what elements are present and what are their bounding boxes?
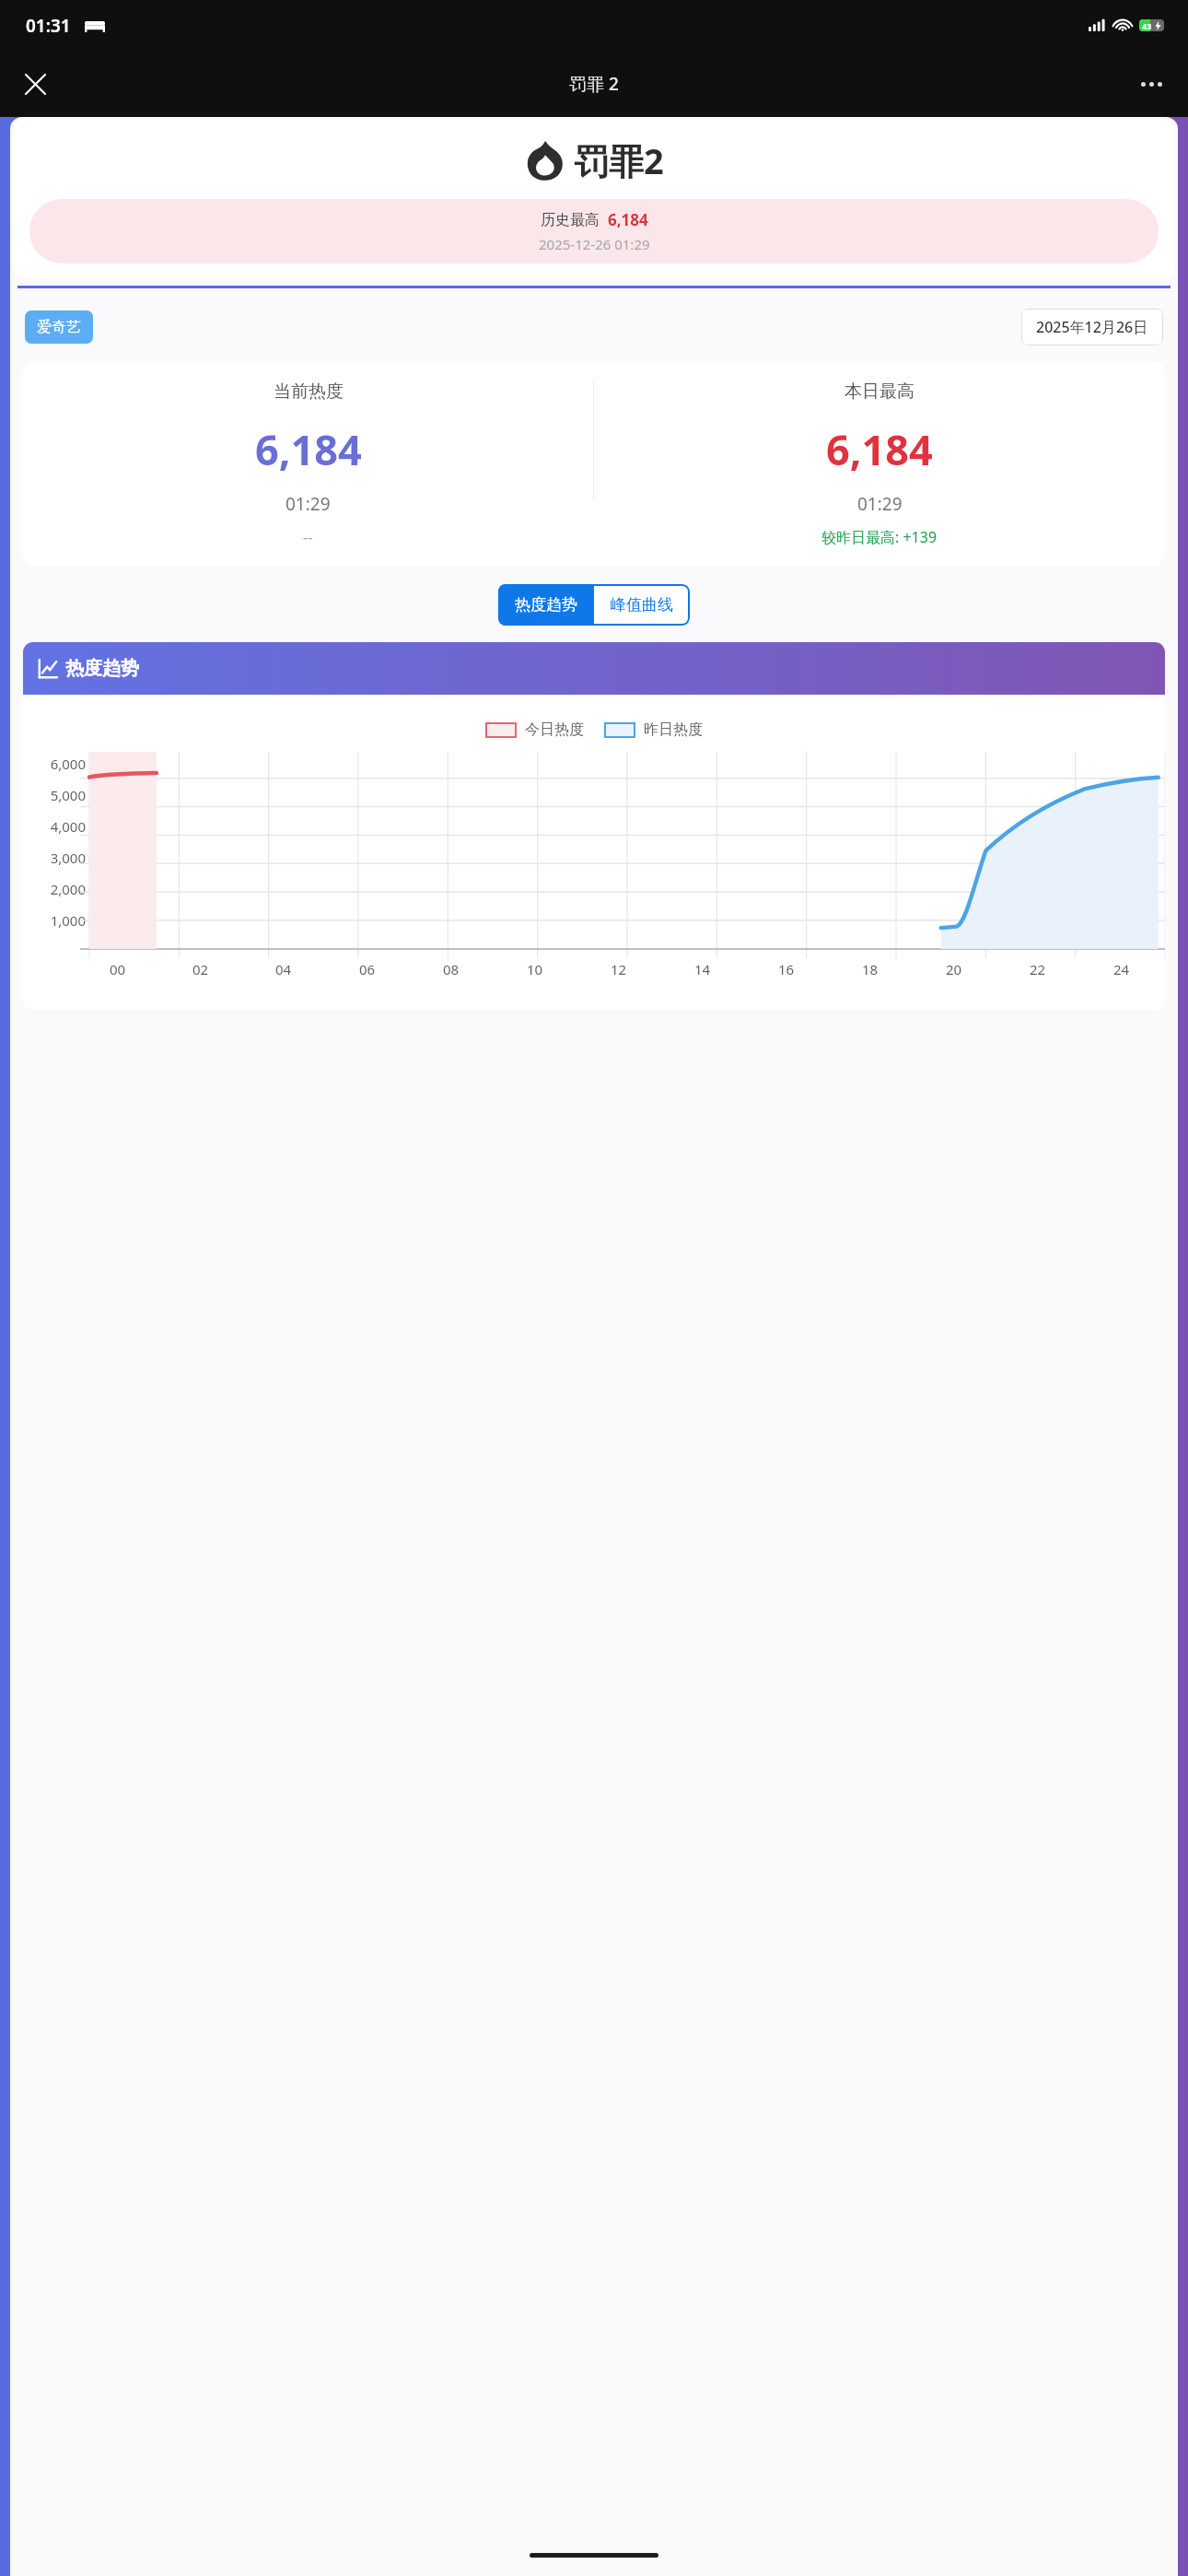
button[interactable]: More options	[1127, 60, 1175, 108]
staticText: 本日最高	[844, 381, 914, 403]
staticText: 6,184	[608, 209, 648, 230]
staticText: 02	[192, 960, 209, 978]
button[interactable]: Close	[11, 60, 59, 108]
staticText: --	[303, 527, 313, 547]
staticText: 历史最高	[541, 211, 600, 229]
staticText: 22	[1030, 960, 1046, 978]
staticText: 当前热度	[274, 381, 344, 403]
staticText: 爱奇艺	[37, 318, 81, 336]
staticText: 18	[862, 960, 879, 978]
staticText: 热度趋势	[515, 595, 577, 615]
staticText: 6,184	[255, 421, 362, 477]
staticText: 4,000	[50, 817, 86, 836]
staticText: 43	[1142, 20, 1152, 31]
staticText: 3,000	[50, 849, 86, 867]
staticText: 2025-12-26 01:29	[539, 235, 650, 253]
button[interactable]: 峰值曲线	[594, 584, 690, 626]
staticText: 5,000	[50, 786, 86, 804]
staticText: 热度趋势	[65, 657, 139, 680]
staticText: 6,184	[826, 421, 933, 477]
button[interactable]: 爱奇艺	[25, 310, 93, 344]
staticText: 12	[611, 960, 627, 978]
staticText: 04	[275, 960, 292, 978]
staticText: 较昨日最高: +139	[821, 527, 938, 547]
staticText: 08	[443, 960, 460, 978]
staticText: 06	[359, 960, 376, 978]
staticText: 罚罪 2	[569, 72, 619, 96]
staticText: 00	[110, 960, 126, 978]
staticText: 01:29	[857, 492, 903, 516]
staticText: 今日热度	[525, 720, 584, 739]
staticText: 16	[778, 960, 795, 978]
staticText: 罚罪2	[574, 136, 664, 184]
staticText: 昨日热度	[644, 720, 703, 739]
staticText: 20	[946, 960, 962, 978]
button[interactable]: 热度趋势	[498, 584, 594, 626]
staticText: 01:29	[285, 492, 331, 516]
staticText: 2,000	[50, 880, 86, 898]
staticText: 01:31	[26, 14, 71, 38]
staticText: 6,000	[50, 755, 86, 773]
button[interactable]: 2025年12月26日	[1021, 309, 1163, 345]
staticText: 10	[527, 960, 543, 978]
staticText: 2025年12月26日	[1036, 317, 1148, 337]
staticText: 24	[1113, 960, 1130, 978]
staticText: 14	[694, 960, 711, 978]
staticText: 峰值曲线	[611, 595, 673, 615]
staticText: 1,000	[50, 911, 86, 930]
